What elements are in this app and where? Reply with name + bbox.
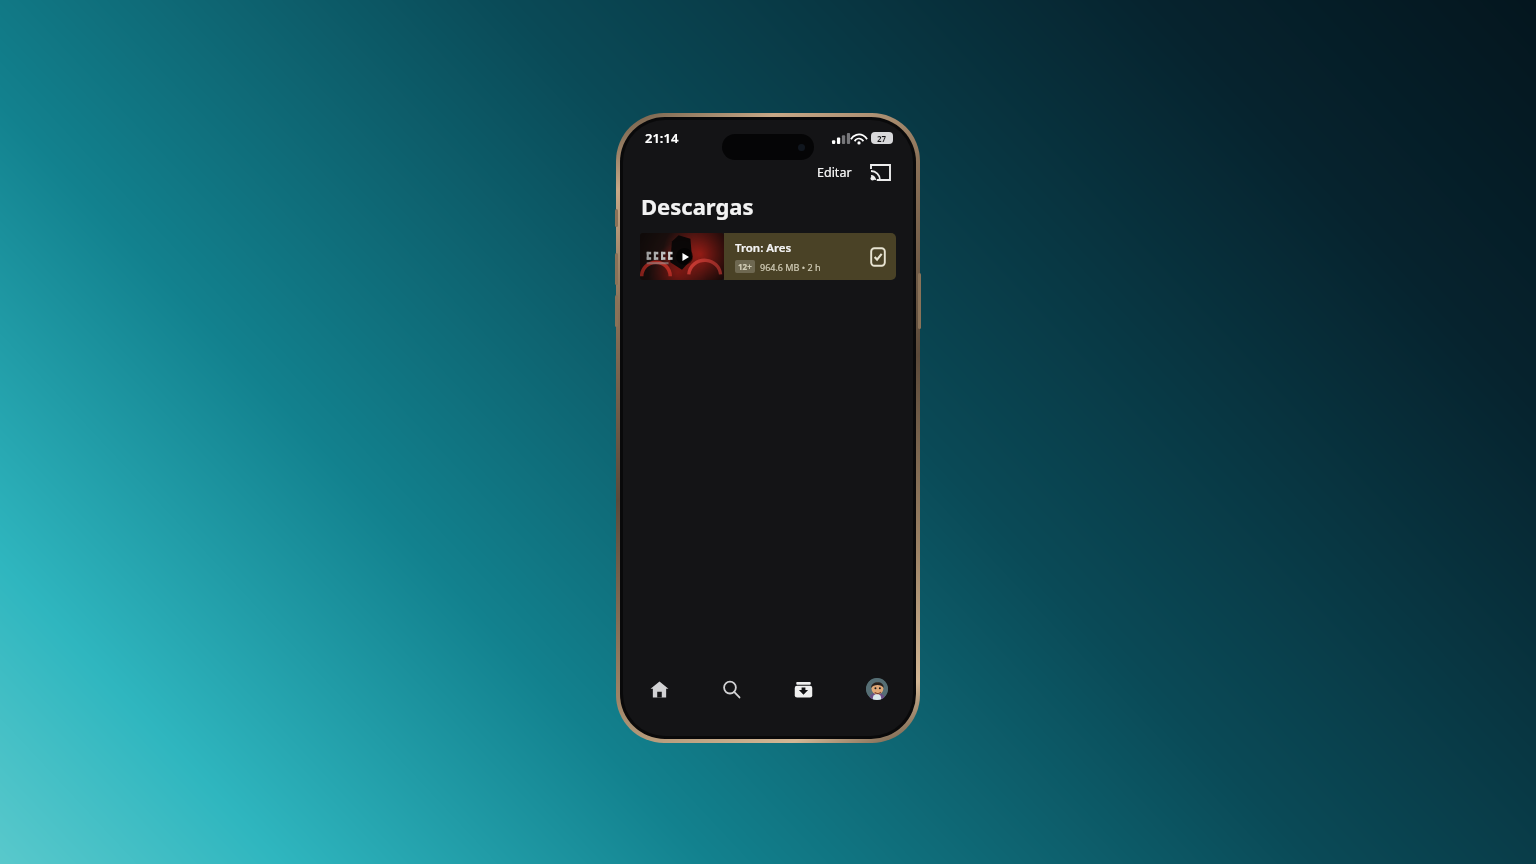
button[interactable]: Search [695,666,767,712]
staticText: Editar [817,164,852,181]
staticText: 21:14 [645,129,679,147]
staticText: 12+ [738,261,752,272]
button[interactable]: Downloads [767,666,840,712]
button[interactable]: Profile [840,666,913,712]
staticText: Descargas [641,191,754,221]
button[interactable]: Downloaded to device [870,247,886,267]
staticText: 964.6 MB • 2 h [760,261,821,273]
button[interactable]: Editar [813,160,856,185]
staticText: 27 [877,133,887,144]
button[interactable]: Cast [868,162,893,183]
button[interactable]: Home [623,666,695,712]
button[interactable]: Tron: Ares [640,233,896,280]
staticText: Tron: Ares [735,240,792,256]
